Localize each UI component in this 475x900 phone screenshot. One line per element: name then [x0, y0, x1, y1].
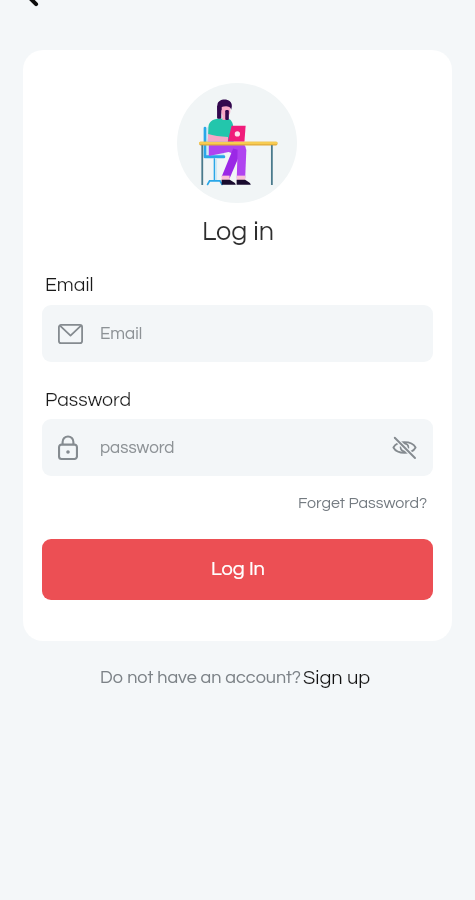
button[interactable]: password [42, 419, 433, 476]
staticText: password [100, 439, 175, 457]
staticText: Log in [202, 218, 274, 246]
button[interactable]: Sign up [303, 668, 371, 689]
staticText: Email [45, 275, 94, 295]
button[interactable]: Do not have an account? [100, 668, 301, 687]
button[interactable]: Email [42, 305, 433, 362]
button[interactable]: Show password [392, 435, 417, 460]
button[interactable]: Log In [42, 539, 433, 600]
button[interactable]: Back [15, 0, 49, 13]
staticText: Password [45, 390, 132, 410]
button[interactable]: Forget Password? [298, 495, 428, 511]
staticText: Log In [211, 559, 265, 580]
staticText: Email [100, 325, 143, 343]
